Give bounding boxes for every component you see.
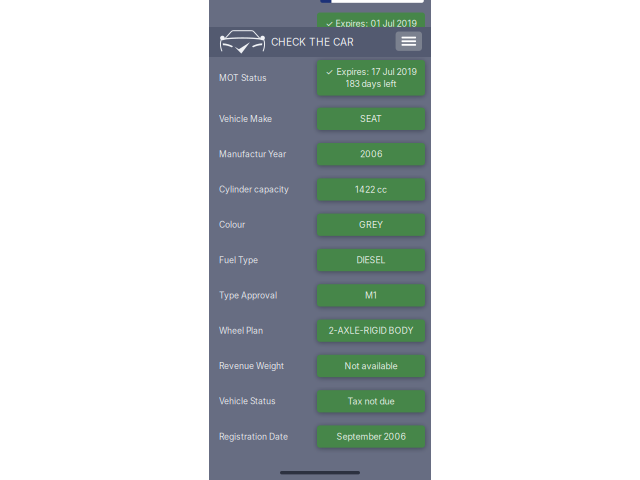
staticText: Wheel Plan <box>219 325 263 336</box>
staticText: Revenue Weight <box>219 361 284 371</box>
button[interactable]: Manufactur Year <box>209 143 431 165</box>
staticText: GREY <box>359 219 383 230</box>
button[interactable]: MOT Status <box>209 60 431 96</box>
staticText: September 2006 <box>336 431 405 442</box>
staticText: CHECK THE CAR <box>271 36 354 48</box>
staticText: Cylinder capacity <box>219 184 289 195</box>
staticText: ✓ <box>325 66 333 77</box>
button[interactable]: Menu <box>396 32 422 52</box>
staticText: 2006 <box>360 149 382 159</box>
staticText: Vehicle Make <box>219 114 272 124</box>
button[interactable]: Vehicle Status <box>209 390 431 412</box>
button[interactable]: Registration Date <box>209 425 431 448</box>
button[interactable]: Type Approval <box>209 284 431 306</box>
staticText: 1422 cc <box>355 184 387 195</box>
button[interactable]: Vehicle Make <box>209 108 431 130</box>
staticText: Manufactur Year <box>219 149 286 159</box>
staticText: Not available <box>344 361 397 371</box>
button[interactable]: Colour <box>209 214 431 236</box>
staticText: Tax not due <box>347 396 394 406</box>
staticText: Type Approval <box>219 290 277 300</box>
staticText: Expires: 17 Jul 2019 <box>336 66 416 77</box>
button[interactable]: Fuel Type <box>209 249 431 271</box>
staticText: Fuel Type <box>219 255 258 265</box>
staticText: Registration Date <box>219 431 288 442</box>
staticText: 183 days left <box>345 78 396 89</box>
staticText: Vehicle Status <box>219 396 276 406</box>
button[interactable]: Cylinder capacity <box>209 178 431 201</box>
staticText: Colour <box>219 220 245 230</box>
staticText: SEAT <box>360 113 382 124</box>
staticText: M1 <box>365 290 377 301</box>
button[interactable]: Wheel Plan <box>209 319 431 342</box>
staticText: 2-AXLE-RIGID BODY <box>328 325 413 336</box>
staticText: ✓ Expires: 01 Jul 2019 <box>325 18 416 29</box>
button[interactable]: Revenue Weight <box>209 355 431 377</box>
staticText: MOT Status <box>219 73 267 83</box>
staticText: DIESEL <box>356 255 385 265</box>
